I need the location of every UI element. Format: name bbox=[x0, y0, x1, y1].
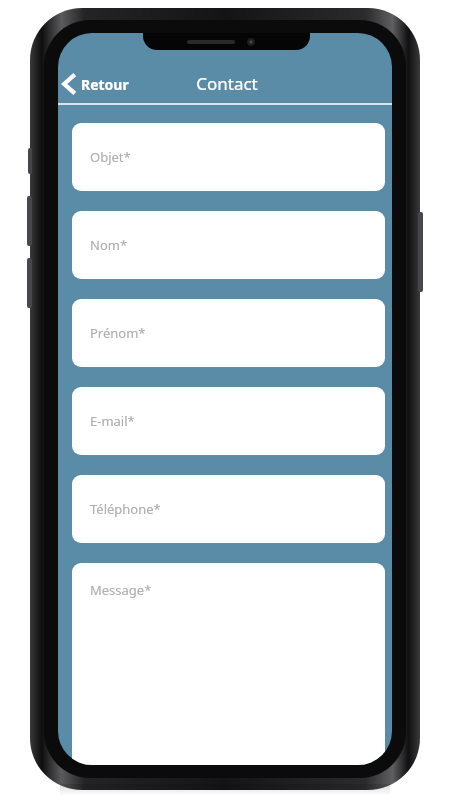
button[interactable]: Téléphone* bbox=[72, 475, 385, 543]
button[interactable]: Nom* bbox=[72, 211, 385, 279]
staticText: Message* bbox=[90, 581, 152, 599]
button[interactable]: Message* bbox=[72, 563, 385, 765]
staticText: Nom* bbox=[90, 236, 128, 254]
staticText: Retour bbox=[81, 75, 129, 94]
button[interactable]: E-mail* bbox=[72, 387, 385, 455]
button[interactable]: Objet* bbox=[72, 123, 385, 191]
staticText: Contact bbox=[196, 72, 258, 95]
staticText: Prénom* bbox=[90, 324, 146, 342]
button[interactable]: Prénom* bbox=[72, 299, 385, 367]
staticText: Téléphone* bbox=[90, 500, 161, 518]
staticText: Objet* bbox=[90, 148, 131, 166]
staticText: E-mail* bbox=[90, 412, 135, 430]
button[interactable]: Retour bbox=[58, 70, 137, 98]
